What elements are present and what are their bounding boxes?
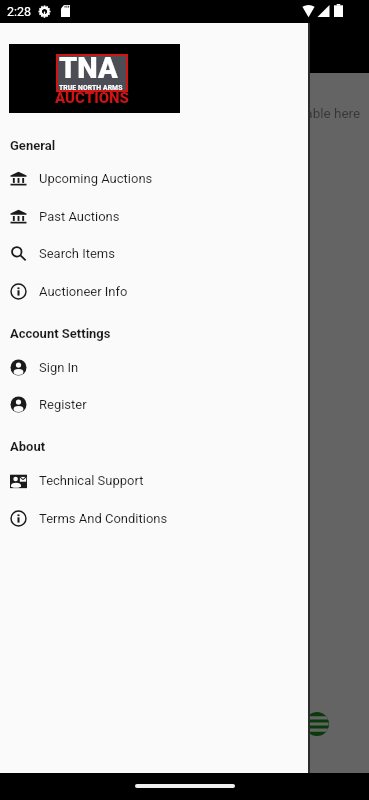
staticText: Search Items	[39, 246, 115, 261]
staticText: 2:28	[7, 4, 32, 19]
button[interactable]: Upcoming Auctions	[0, 159, 310, 197]
staticText: Account Settings	[10, 326, 111, 341]
staticText: Terms And Conditions	[39, 511, 168, 526]
button[interactable]: Register	[0, 385, 310, 423]
staticText: General	[10, 138, 56, 153]
staticText: TRUE NORTH ARMS	[59, 84, 123, 92]
staticText: TNA	[59, 51, 118, 85]
staticText: Past Auctions	[39, 209, 120, 224]
button[interactable]: Terms And Conditions	[0, 499, 310, 537]
staticText: Auctioneer Info	[39, 284, 128, 299]
button[interactable]: Sign In	[0, 348, 310, 386]
button[interactable]: Technical Support	[0, 461, 310, 499]
staticText: No auctions available here	[202, 105, 361, 121]
button[interactable]: Past Auctions	[0, 197, 310, 235]
staticText: Technical Support	[39, 473, 144, 488]
button[interactable]: Auctioneer Info	[0, 272, 310, 310]
staticText: Upcoming Auctions	[39, 171, 153, 186]
staticText: Sign In	[39, 360, 79, 375]
staticText: About	[10, 439, 46, 454]
staticText: AUCTIONS	[55, 89, 129, 107]
button[interactable]: Open navigation menu	[305, 712, 329, 736]
staticText: Register	[39, 397, 87, 412]
button[interactable]: Search Items	[0, 234, 310, 272]
